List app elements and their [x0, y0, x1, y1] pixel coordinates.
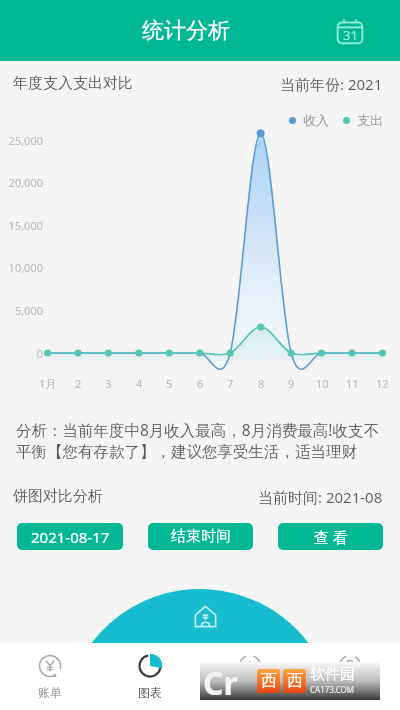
staticText: 6 — [197, 376, 204, 391]
staticText: 12 — [376, 376, 389, 391]
staticText: 软件园 — [310, 665, 355, 684]
staticText: 2 — [75, 376, 82, 391]
button[interactable]: 图表 — [100, 643, 200, 710]
staticText: 11 — [346, 376, 359, 391]
button[interactable]: 结束时间 — [148, 523, 253, 550]
button[interactable]: 记录 — [200, 643, 300, 710]
staticText: 8 — [258, 376, 265, 391]
staticText: 统计分析 — [142, 17, 230, 45]
staticText: 当前年份: 2021 — [280, 74, 383, 94]
staticText: 分析：当前年度中8月收入最高，8月消费最高!收支不平衡【您有存款了】，建议您享受… — [16, 419, 380, 462]
button[interactable]: 2021-08-17 — [17, 523, 123, 550]
staticText: 15,000 — [8, 218, 43, 233]
staticText: 西 — [261, 671, 277, 691]
staticText: 31 — [343, 26, 358, 44]
staticText: 3 — [105, 376, 112, 391]
staticText: 记录 — [238, 685, 262, 700]
staticText: 4 — [136, 376, 143, 391]
staticText: 结束时间 — [171, 527, 231, 546]
staticText: CA173.COM — [310, 684, 355, 695]
staticText: 10,000 — [8, 260, 43, 275]
staticText: 账单 — [38, 685, 62, 700]
staticText: 20,000 — [8, 175, 43, 190]
staticText: 当前时间: 2021-08 — [258, 487, 383, 507]
staticText: 5 — [166, 376, 173, 391]
staticText: 查 看 — [314, 527, 348, 547]
staticText: 1月 — [39, 376, 57, 391]
button[interactable]: 账单 — [0, 643, 100, 710]
button[interactable]: Home — [189, 600, 221, 632]
staticText: 5,000 — [14, 303, 43, 318]
staticText: 图表 — [138, 685, 162, 700]
button[interactable]: Calendar — [330, 11, 370, 51]
button[interactable]: 查 看 — [278, 523, 383, 550]
staticText: 7 — [227, 376, 234, 391]
staticText: 支出 — [357, 112, 383, 128]
staticText: 25,000 — [8, 133, 43, 148]
staticText: 0 — [36, 346, 43, 361]
staticText: 10 — [316, 376, 329, 391]
staticText: 我的 — [338, 685, 362, 700]
staticText: 年度支入支出对比 — [13, 74, 133, 93]
staticText: Cr — [203, 661, 238, 699]
staticText: 收入 — [303, 112, 329, 128]
staticText: 9 — [288, 376, 295, 391]
button[interactable]: 我的 — [300, 643, 400, 710]
staticText: 饼图对比分析 — [13, 487, 103, 506]
staticText: 2021-08-17 — [31, 527, 110, 547]
staticText: 西 — [287, 671, 303, 691]
